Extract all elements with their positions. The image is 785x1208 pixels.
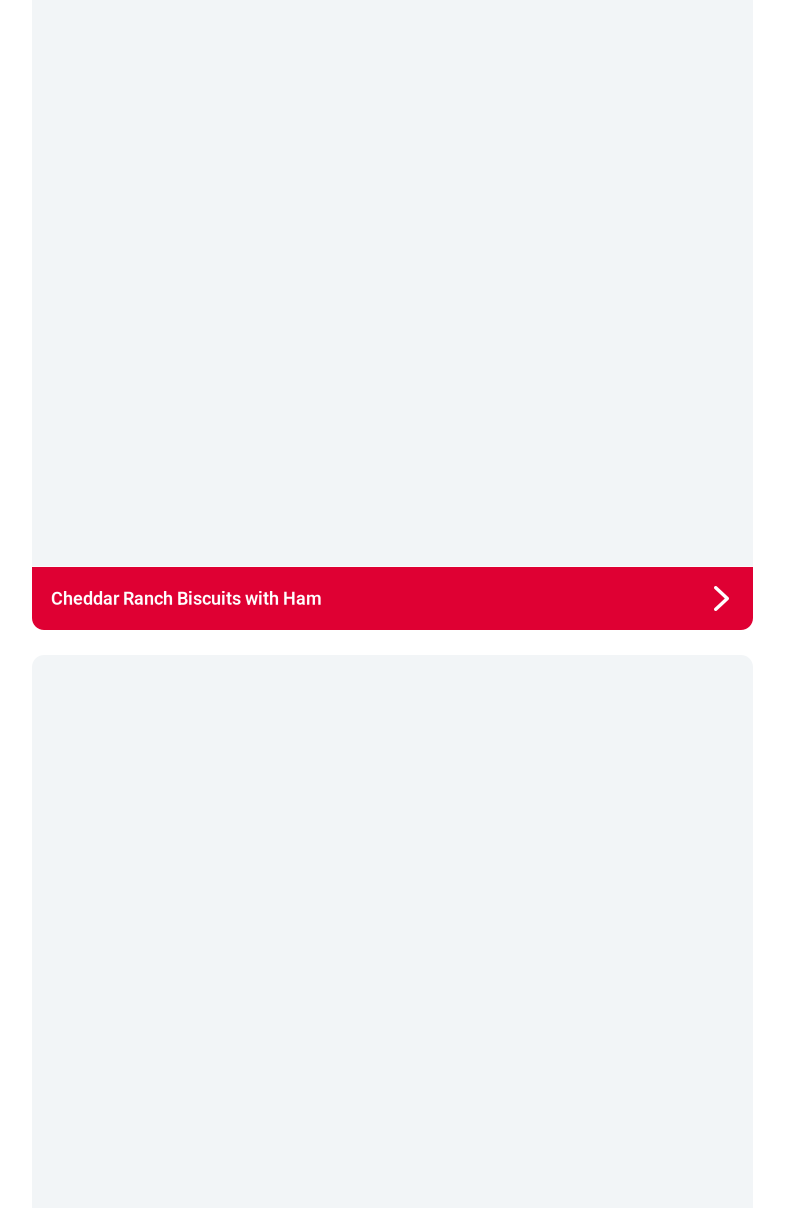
button[interactable]: Cheddar Ranch Biscuits with Ham	[32, 0, 753, 630]
staticText: Cheddar Ranch Biscuits with Ham	[51, 588, 322, 609]
